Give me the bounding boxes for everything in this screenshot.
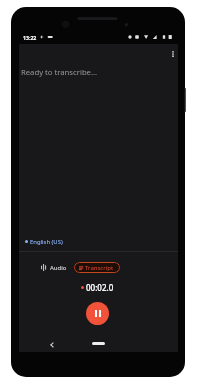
button[interactable]: Back [44,338,60,354]
button[interactable]: Home [92,342,105,345]
staticText: Transcript [85,264,114,272]
staticText: 13:22 [23,34,37,41]
button[interactable]: Transcript [74,262,120,273]
staticText: Audio [50,264,67,272]
staticText: Ready to transcribe… [21,67,98,77]
button[interactable]: Audio [41,261,67,274]
staticText: 00:02.0 [86,282,114,292]
button[interactable]: Pause recording [86,302,109,325]
button[interactable]: More options [164,45,182,63]
staticText: English (US) [30,238,63,246]
button[interactable]: English (US) [19,234,109,249]
